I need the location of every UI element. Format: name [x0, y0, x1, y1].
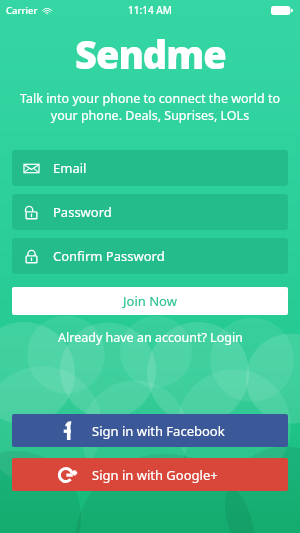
- staticText: Password: [53, 203, 112, 221]
- staticText: Sendme: [75, 28, 226, 80]
- staticText: Carrier: [6, 4, 38, 17]
- button[interactable]: Email: [12, 150, 288, 186]
- button[interactable]: Sign in with Facebook: [12, 414, 288, 447]
- other: Sign in with Facebook: [59, 422, 77, 440]
- button[interactable]: Password: [12, 194, 288, 230]
- button[interactable]: Already have an account? Login: [0, 329, 300, 346]
- staticText: Already have an account? Login: [58, 329, 243, 346]
- staticText: Sign in with Google+: [92, 466, 218, 484]
- staticText: Sign in with Facebook: [92, 422, 225, 440]
- other: Sign in with Google+: [59, 466, 77, 484]
- button[interactable]: Join Now: [12, 287, 288, 315]
- staticText: 11:14 AM: [128, 3, 172, 17]
- staticText: Join Now: [123, 292, 177, 310]
- staticText: Confirm Password: [53, 247, 165, 265]
- staticText: Email: [53, 159, 87, 177]
- button[interactable]: Confirm Password: [12, 238, 288, 274]
- button[interactable]: Sign in with Google+: [12, 458, 288, 491]
- staticText: Talk into your phone to connect the worl…: [16, 90, 284, 124]
